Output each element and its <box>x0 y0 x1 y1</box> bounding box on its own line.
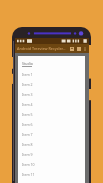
button[interactable]: Collapse all <box>68 45 75 52</box>
staticText: Item 5 <box>22 112 33 117</box>
button[interactable]: Item 3 <box>22 89 85 99</box>
staticText: Item 7 <box>22 132 33 137</box>
button[interactable]: Item 8 <box>22 139 85 149</box>
button[interactable]: Item 2 <box>22 79 85 89</box>
staticText: Item 6 <box>22 122 33 127</box>
staticText: Item 1 <box>22 72 33 77</box>
button[interactable]: More options <box>82 46 88 52</box>
button[interactable]: Item 1 <box>22 69 85 79</box>
staticText: Item 10 <box>22 162 35 167</box>
staticText: Item 3 <box>22 92 33 97</box>
button[interactable]: Item 4 <box>22 99 85 109</box>
button[interactable]: Expand all <box>75 45 82 52</box>
button[interactable]: Studio <box>22 59 85 69</box>
button[interactable]: Item 6 <box>22 119 85 129</box>
button[interactable]: Item 9 <box>22 149 85 159</box>
button[interactable]: Item 10 <box>22 159 85 169</box>
button[interactable]: Item 7 <box>22 129 85 139</box>
staticText: Item 4 <box>22 102 33 107</box>
staticText: Studio <box>22 61 33 66</box>
staticText: Item 9 <box>22 152 33 157</box>
staticText: Item 8 <box>22 142 33 147</box>
button[interactable]: Item 5 <box>22 109 85 119</box>
staticText: Item 11 <box>22 172 35 177</box>
staticText: Item 2 <box>22 82 33 87</box>
button[interactable]: Item 11 <box>22 169 85 179</box>
staticText: Android Treeview Recycler… <box>17 46 68 51</box>
